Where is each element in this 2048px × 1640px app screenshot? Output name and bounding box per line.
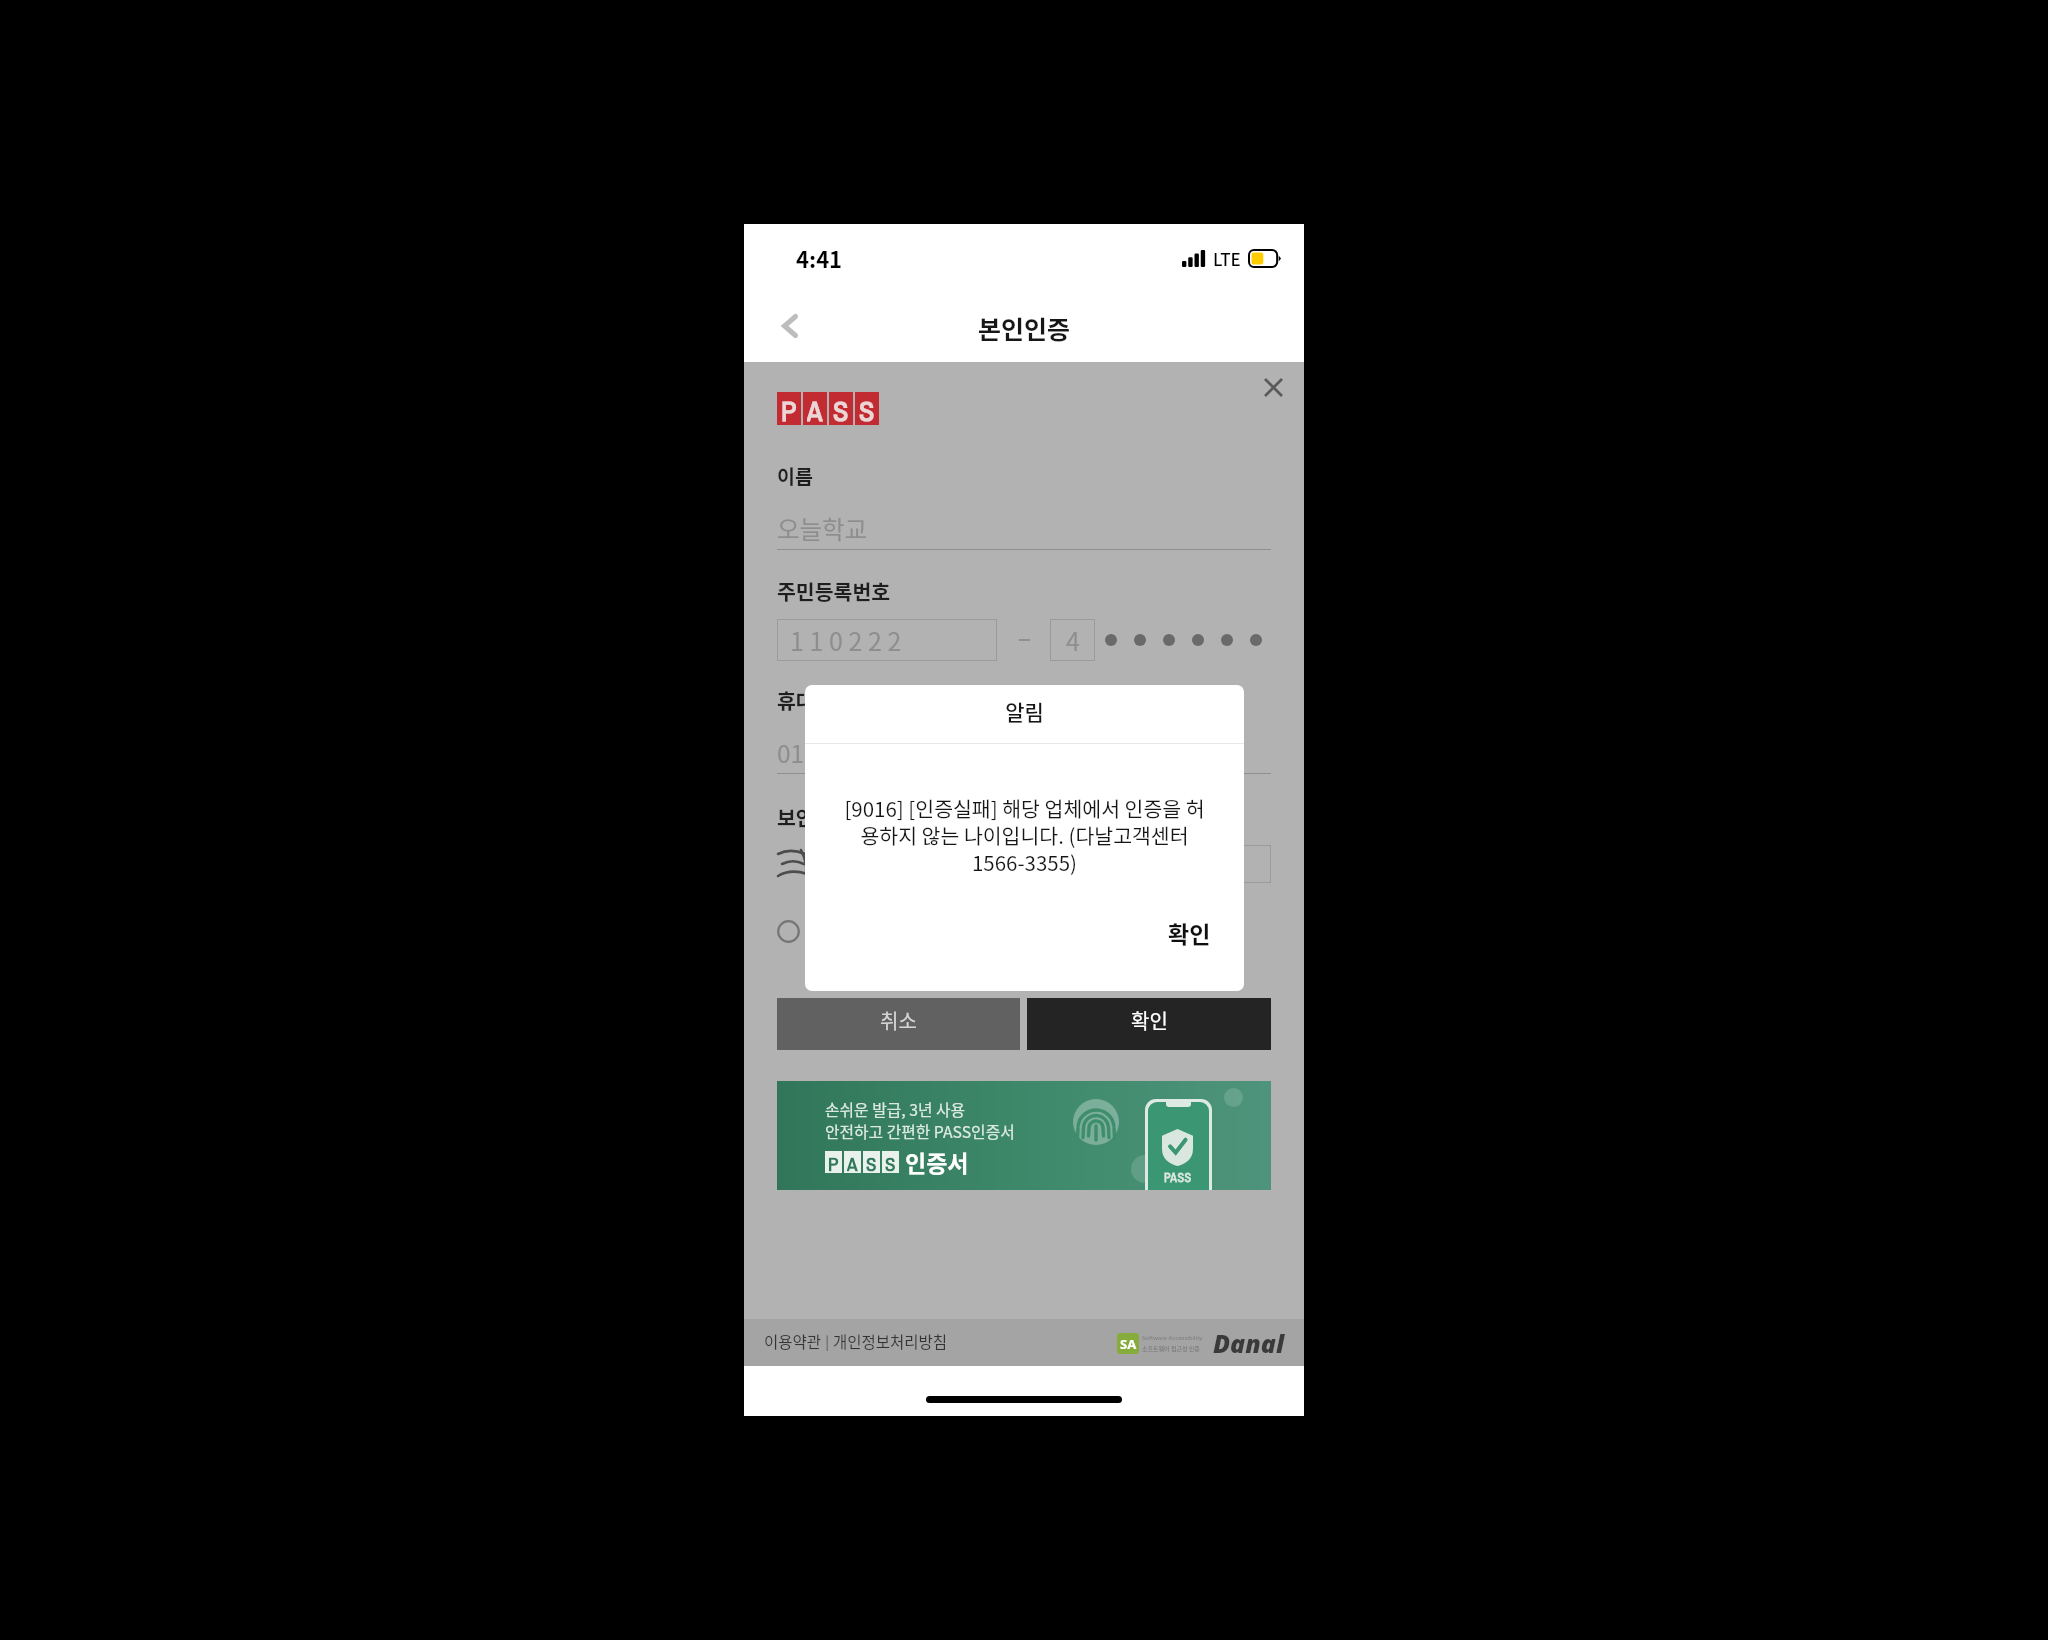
staticText: 손쉬운 발급, 3년 사용: [825, 1098, 966, 1121]
staticText: 주민등록번호: [777, 576, 891, 606]
staticText: 본인인증: [744, 310, 1304, 346]
staticText: 개인정보처리방침: [833, 1330, 948, 1352]
button[interactable]: Security code input: [1195, 845, 1271, 883]
button[interactable]: Back: [758, 294, 822, 358]
staticText: 알림: [805, 696, 1244, 726]
button[interactable]: 010: [777, 724, 1271, 770]
staticText: A: [807, 392, 823, 425]
staticText: A: [847, 1151, 858, 1173]
button[interactable]: Agree: [771, 914, 806, 949]
button[interactable]: 취소: [777, 998, 1020, 1050]
staticText: 오늘학교: [777, 511, 868, 546]
staticText: P: [828, 1151, 839, 1173]
staticText: 4: [1066, 622, 1080, 658]
staticText: 취소: [880, 1006, 917, 1035]
staticText: S: [885, 1151, 896, 1173]
staticText: 확인: [1131, 1006, 1168, 1035]
staticText: P: [781, 392, 797, 425]
staticText: S: [833, 392, 849, 425]
staticText: 이름: [777, 461, 813, 489]
staticText: 이용약관: [764, 1330, 822, 1352]
staticText: Software Accessibility: [1142, 1334, 1203, 1342]
staticText: 확인: [1168, 916, 1211, 949]
staticText: |: [822, 1331, 833, 1351]
staticText: Danal: [1213, 1326, 1285, 1360]
button[interactable]: 개인정보처리방침: [833, 1324, 948, 1358]
staticText: 소프트웨어 접근성 인증: [1142, 1344, 1200, 1353]
staticText: 휴대폰번호: [777, 685, 872, 715]
button[interactable]: 오늘학교: [777, 500, 1271, 546]
staticText: 1 1 0 2 2 2: [790, 622, 902, 658]
staticText: 인증서: [905, 1145, 969, 1178]
staticText: SA: [1120, 1335, 1137, 1353]
staticText: LTE: [1213, 246, 1241, 271]
staticText: 안전하고 간편한 PASS인증서: [825, 1120, 1015, 1143]
button[interactable]: 1 1 0 2 2 2: [777, 619, 997, 661]
staticText: 010: [777, 735, 818, 770]
staticText: 보안문자: [777, 802, 853, 832]
staticText: 4:41: [796, 242, 843, 274]
button[interactable]: 이용약관: [764, 1324, 822, 1358]
button[interactable]: Close: [1251, 365, 1295, 409]
staticText: PASS: [1164, 1170, 1192, 1186]
button[interactable]: 확인: [1027, 998, 1271, 1050]
staticText: [9016] [인증실패] 해당 업체에서 인증을 허용하지 않는 나이입니다.…: [835, 793, 1214, 877]
button[interactable]: 확인: [1148, 900, 1231, 965]
button[interactable]: 4: [1050, 619, 1095, 661]
staticText: S: [866, 1151, 877, 1173]
staticText: S: [859, 392, 875, 425]
button[interactable]: PASS: [777, 1081, 1271, 1190]
